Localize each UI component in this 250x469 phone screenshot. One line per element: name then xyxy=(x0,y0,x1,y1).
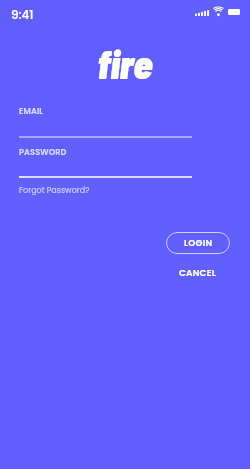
staticText: EMAIL xyxy=(19,105,44,116)
staticText: Forgot Password? xyxy=(19,185,90,196)
staticText: LOGIN xyxy=(184,237,213,250)
other: Battery xyxy=(228,9,240,15)
button[interactable]: LOGIN xyxy=(166,232,230,254)
other: Cellular signal xyxy=(195,9,209,16)
staticText: PASSWORD xyxy=(19,146,67,157)
button[interactable]: CANCEL xyxy=(174,263,222,283)
staticText: fire xyxy=(97,40,153,87)
staticText: 9:41 xyxy=(11,6,34,23)
staticText: CANCEL xyxy=(179,267,217,280)
other: Wi-Fi xyxy=(212,6,225,17)
button[interactable]: Forgot Password? xyxy=(17,183,88,194)
